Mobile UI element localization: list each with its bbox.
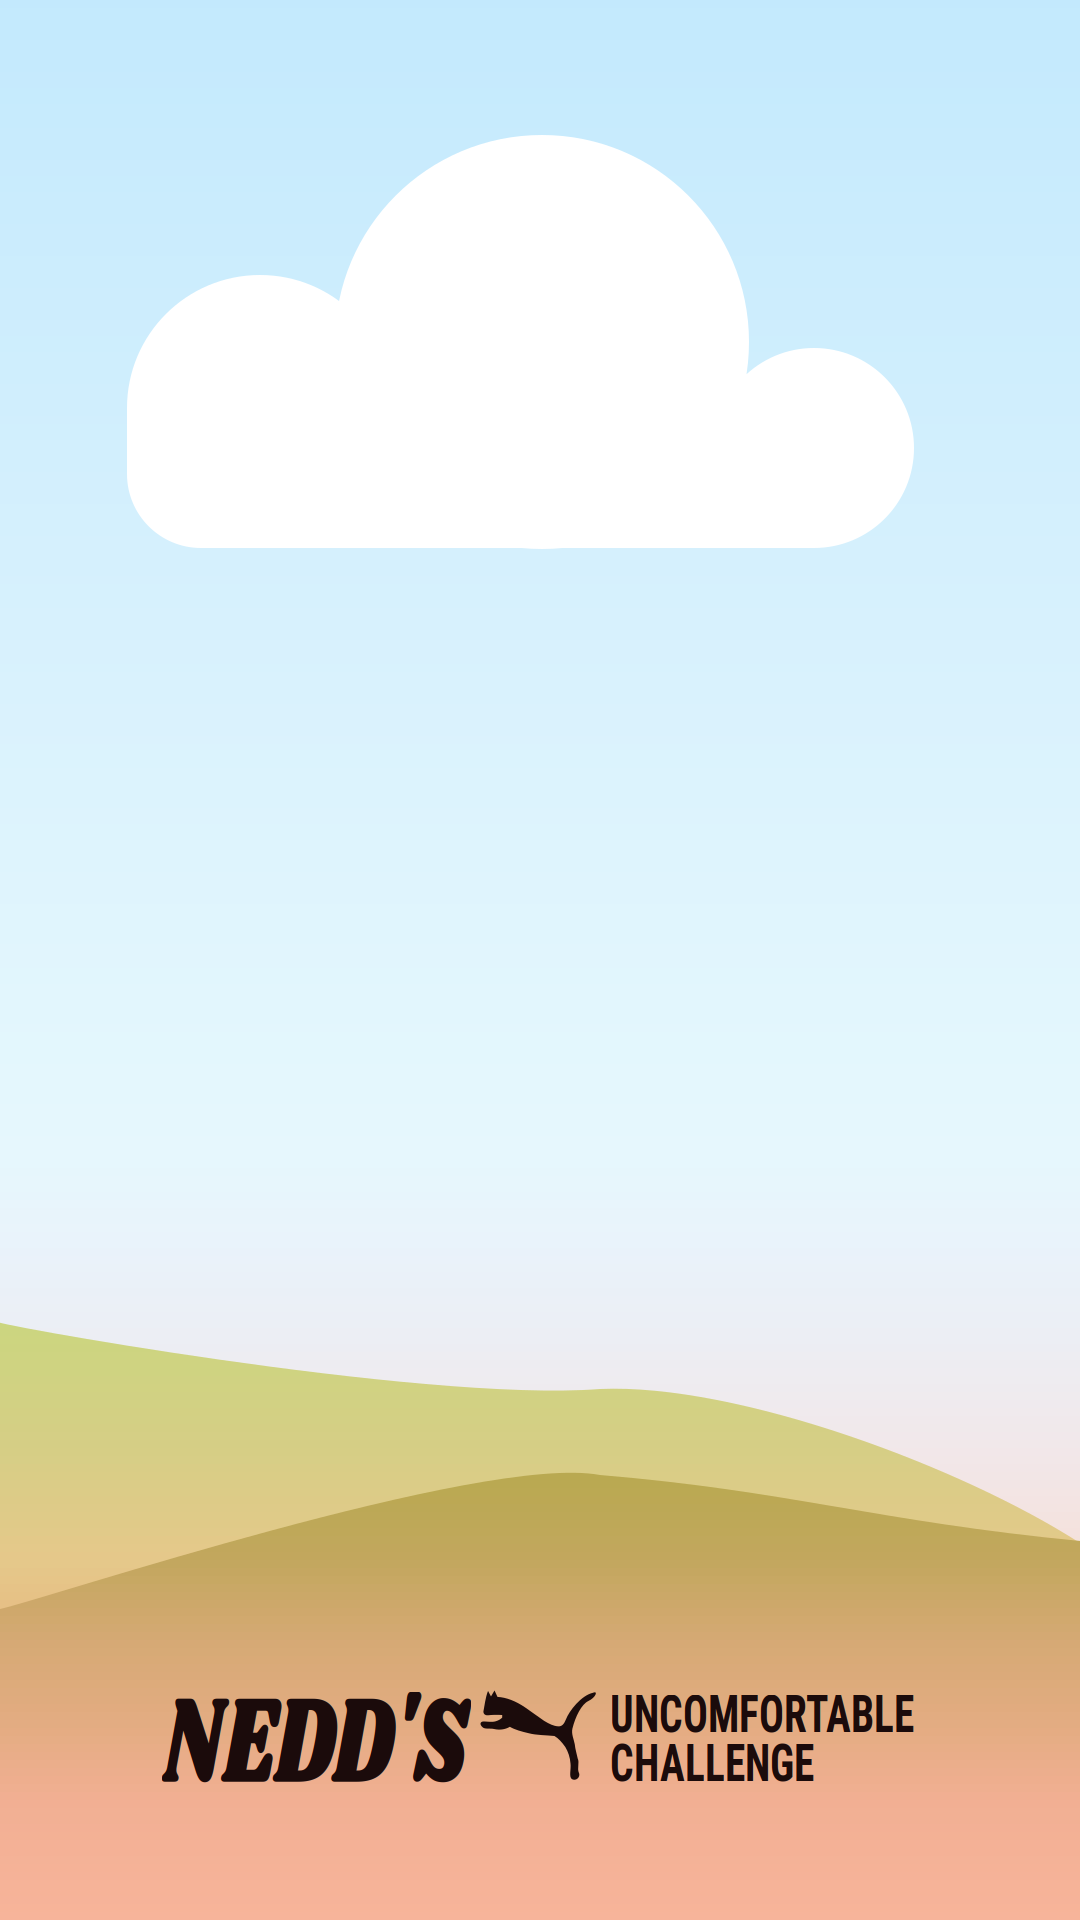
staticText: UNCOMFORTABLE xyxy=(610,1695,914,1743)
staticText: NEDD'S xyxy=(163,1687,468,1803)
staticText: CHALLENGE xyxy=(610,1734,814,1783)
